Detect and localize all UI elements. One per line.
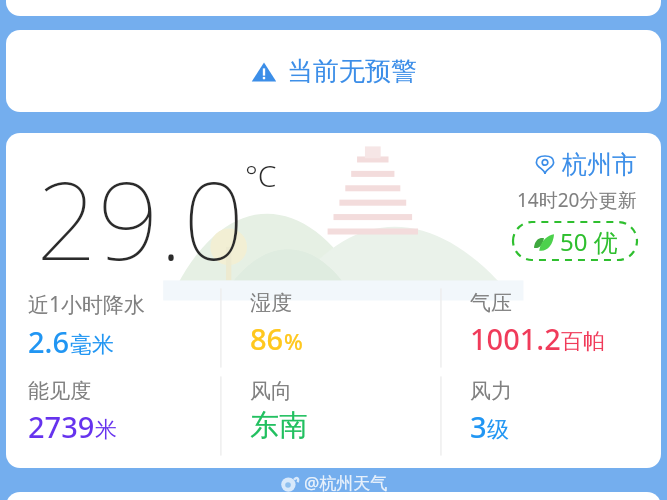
button[interactable] (6, 0, 661, 16)
button[interactable]: 气压 (440, 284, 661, 372)
staticText: 风向 (250, 378, 292, 404)
staticText: 14时20分更新 (517, 187, 637, 213)
staticText: % (284, 326, 303, 356)
other: Warning (251, 59, 277, 85)
button[interactable]: 风向 (220, 372, 440, 460)
other: Location (535, 155, 555, 175)
staticText: 毫米 (70, 331, 114, 359)
staticText: 气压 (470, 290, 512, 316)
staticText: 风力 (470, 378, 512, 404)
button[interactable]: 50 优 (513, 222, 637, 260)
staticText: 2739 (28, 407, 95, 446)
staticText: 29.0 (36, 145, 245, 292)
staticText: 东南 (250, 407, 308, 444)
staticText: 2.6 (28, 322, 70, 361)
staticText: 3 (470, 407, 487, 446)
staticText: 杭州市 (562, 149, 637, 180)
staticText: 级 (487, 416, 509, 444)
staticText: 米 (95, 416, 117, 444)
button[interactable]: 近1小时降水 (6, 284, 220, 372)
button[interactable]: Location (535, 149, 637, 180)
button[interactable]: 风力 (440, 372, 661, 460)
staticText: 湿度 (250, 290, 292, 316)
staticText: 百帕 (561, 328, 605, 356)
staticText: 当前无预警 (287, 55, 417, 88)
staticText: @杭州天气 (304, 471, 388, 494)
staticText: 能见度 (28, 378, 91, 404)
staticText: °C (245, 155, 277, 196)
button[interactable]: 能见度 (6, 372, 220, 460)
staticText: 1001.2 (470, 319, 561, 358)
staticText: 86 (250, 319, 284, 358)
staticText: 近1小时降水 (28, 290, 146, 319)
button[interactable]: Warning (6, 30, 661, 112)
button[interactable]: 29.0 (6, 133, 661, 468)
staticText: 50 优 (560, 225, 618, 258)
button[interactable]: 湿度 (220, 284, 440, 372)
